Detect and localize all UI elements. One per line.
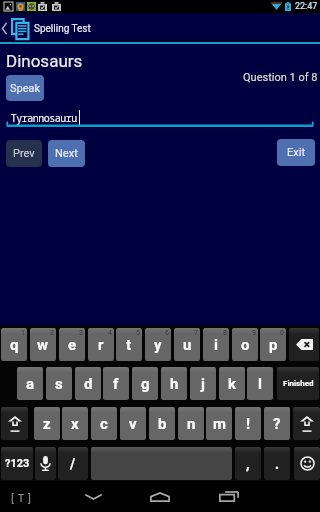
staticText: 6 [165, 329, 169, 337]
button[interactable]: d [75, 367, 101, 400]
button[interactable]: q [1, 328, 27, 361]
button[interactable]: Exit [277, 139, 315, 166]
staticText: d [84, 375, 93, 393]
button[interactable]: ?123 [1, 447, 33, 480]
button[interactable]: k [219, 367, 245, 400]
button[interactable]: u [174, 328, 200, 361]
staticText: Tyrannosauru [11, 111, 77, 125]
button[interactable]: v [120, 407, 146, 440]
button[interactable]: Prev [6, 140, 42, 167]
staticText: 9 [252, 329, 256, 337]
staticText: f [113, 375, 119, 393]
staticText: i [214, 336, 218, 354]
staticText: Finished [283, 379, 314, 388]
button[interactable]: / [58, 447, 88, 480]
staticText: / [70, 456, 76, 472]
staticText: 22:47 [295, 1, 318, 12]
staticText: x [71, 415, 79, 433]
button[interactable]: Space [91, 447, 232, 480]
staticText: p [269, 336, 278, 354]
button[interactable]: e [59, 328, 85, 361]
button[interactable]: x [62, 407, 88, 440]
staticText: s [55, 375, 63, 393]
staticText: y [154, 336, 162, 354]
button[interactable]: Delete [289, 328, 319, 361]
button[interactable]: Home [133, 481, 187, 512]
staticText: . [275, 456, 280, 472]
button[interactable]: t [116, 328, 142, 361]
staticText: n [187, 415, 196, 433]
staticText: 4 [108, 329, 112, 337]
staticText: 7 [194, 329, 198, 337]
button[interactable]: , [235, 447, 261, 480]
staticText: 1 [21, 329, 25, 337]
staticText: ? [273, 415, 281, 433]
staticText: q [10, 336, 19, 354]
staticText: r [98, 336, 104, 354]
staticText: g [141, 375, 150, 393]
button[interactable]: Shift [1, 407, 28, 440]
staticText: Exit [287, 146, 305, 159]
staticText: 8 [223, 329, 227, 337]
staticText: j [201, 375, 205, 393]
staticText: o [241, 336, 250, 354]
staticText: b [158, 415, 167, 433]
button[interactable]: s [46, 367, 72, 400]
button[interactable]: Navigate up [0, 13, 320, 44]
staticText: Next [55, 147, 78, 160]
staticText: 0 [280, 329, 284, 337]
staticText: k [228, 375, 237, 393]
staticText: Question 1 of 8 [243, 71, 318, 84]
button[interactable]: y [145, 328, 171, 361]
staticText: t [126, 336, 132, 354]
button[interactable]: Finished [277, 367, 319, 400]
button[interactable]: Emoji [294, 447, 320, 480]
button[interactable]: Hide keyboard [66, 481, 120, 512]
button[interactable]: Speak [6, 75, 44, 101]
staticText: a [26, 375, 35, 393]
staticText: [ T ] [11, 492, 32, 505]
button[interactable]: n [178, 407, 204, 440]
button[interactable]: r [88, 328, 114, 361]
staticText: Spelling Test [34, 23, 91, 35]
staticText: 5 [136, 329, 140, 337]
button[interactable]: Recent apps [202, 481, 256, 512]
staticText: c [100, 415, 108, 433]
staticText: e [68, 336, 77, 354]
button[interactable]: w [30, 328, 56, 361]
staticText: ?123 [5, 457, 30, 470]
button[interactable]: l [247, 367, 273, 400]
staticText: Prev [13, 147, 35, 160]
button[interactable]: Shift [293, 407, 320, 440]
staticText: Speak [10, 82, 41, 95]
staticText: 3 [79, 329, 83, 337]
button[interactable]: ! [235, 407, 261, 440]
button[interactable]: z [34, 407, 60, 440]
staticText: , [246, 456, 250, 472]
button[interactable]: g [132, 367, 158, 400]
button[interactable]: i [203, 328, 229, 361]
button[interactable]: ? [264, 407, 290, 440]
staticText: z [43, 415, 51, 433]
button[interactable]: Voice input [35, 447, 56, 480]
button[interactable]: f [103, 367, 129, 400]
button[interactable]: Next [48, 140, 85, 167]
button[interactable]: h [161, 367, 187, 400]
staticText: h [170, 375, 179, 393]
staticText: m [213, 415, 226, 433]
button[interactable]: b [149, 407, 175, 440]
staticText: Dinosaurs [6, 51, 83, 71]
staticText: v [129, 415, 137, 433]
button[interactable]: p [260, 328, 286, 361]
staticText: l [258, 375, 262, 393]
button[interactable]: j [190, 367, 216, 400]
staticText: ! [246, 415, 251, 433]
button[interactable]: m [206, 407, 232, 440]
button[interactable]: o [232, 328, 258, 361]
staticText: w [37, 336, 49, 354]
button[interactable]: a [17, 367, 43, 400]
staticText: u [183, 336, 192, 354]
staticText: 2 [50, 329, 54, 337]
button[interactable]: . [264, 447, 290, 480]
button[interactable]: c [91, 407, 117, 440]
